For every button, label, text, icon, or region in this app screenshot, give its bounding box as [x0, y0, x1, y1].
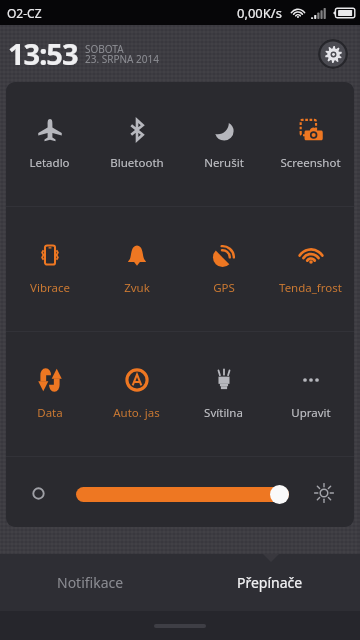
- button[interactable]: GPS: [180, 207, 267, 331]
- button[interactable]: Vibrace: [6, 207, 93, 331]
- button[interactable]: Upravit: [267, 332, 354, 456]
- staticText: Zvuk: [124, 280, 150, 296]
- staticText: SOBOTA: [85, 42, 124, 56]
- button[interactable]: Brightness: [76, 482, 289, 506]
- staticText: O2-CZ: [7, 5, 42, 21]
- button[interactable]: Letadlo: [6, 82, 93, 206]
- staticText: 23. SRPNA 2014: [85, 52, 159, 66]
- button[interactable]: Data: [6, 332, 93, 456]
- staticText: 0,00K/s: [237, 4, 282, 22]
- staticText: Screenshot: [280, 155, 341, 171]
- staticText: Vibrace: [30, 280, 70, 296]
- button[interactable]: Nerušit: [180, 82, 267, 206]
- staticText: Letadlo: [29, 155, 70, 171]
- button[interactable]: Tenda_frost: [267, 207, 354, 331]
- staticText: Data: [37, 405, 63, 421]
- button[interactable]: Bluetooth: [93, 82, 180, 206]
- staticText: Svítilna: [204, 405, 243, 421]
- button[interactable]: Notifikace: [0, 554, 180, 611]
- staticText: Upravit: [291, 405, 331, 421]
- button[interactable]: Zvuk: [93, 207, 180, 331]
- button[interactable]: Screenshot: [267, 82, 354, 206]
- staticText: GPS: [213, 280, 235, 296]
- staticText: Nerušit: [204, 155, 244, 171]
- staticText: Notifikace: [57, 573, 124, 592]
- button[interactable]: Settings: [318, 39, 348, 69]
- staticText: Auto. jas: [113, 405, 160, 421]
- staticText: Přepínače: [237, 573, 303, 592]
- staticText: 13:53: [8, 34, 78, 73]
- button[interactable]: Přepínače: [180, 554, 360, 611]
- button[interactable]: Auto. jas: [93, 332, 180, 456]
- staticText: Tenda_frost: [279, 280, 342, 296]
- staticText: Bluetooth: [110, 155, 164, 171]
- button[interactable]: Svítilna: [180, 332, 267, 456]
